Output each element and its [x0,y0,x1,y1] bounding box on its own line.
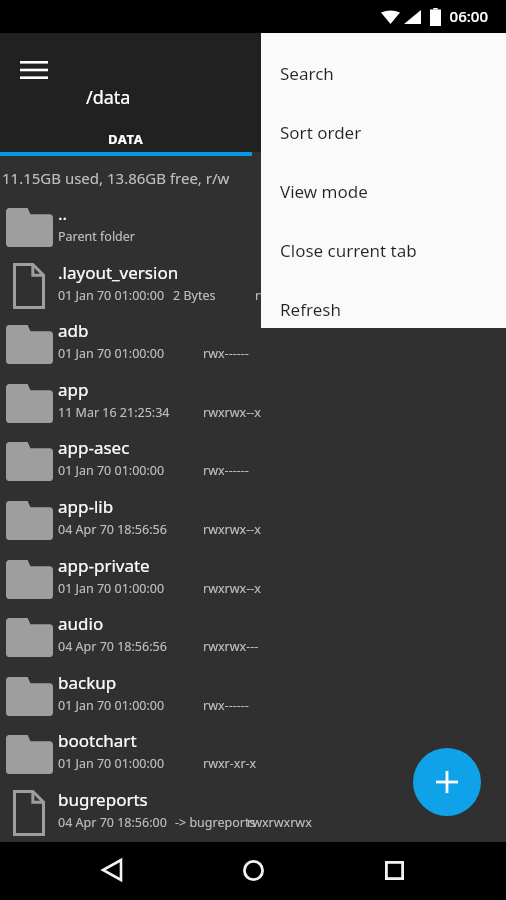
button[interactable]: bootchart [0,725,506,784]
staticText: rw------- [255,287,299,304]
button[interactable]: Sort order [261,108,506,156]
staticText: 01 Jan 70 01:00:00 [58,755,165,772]
staticText: -> bugreports [175,814,256,831]
staticText: rwxrwx--x [203,580,261,597]
staticText: rwxrwx--- [203,638,259,655]
button[interactable]: adb [0,315,506,374]
staticText: rwxrwx--x [203,521,261,538]
staticText: 04 Apr 70 18:56:00 [58,814,167,831]
staticText: rwxrwxrwx [247,814,312,831]
staticText: audio [58,612,104,635]
button[interactable]: .layout_version [0,257,506,316]
button[interactable]: app-private [0,550,506,609]
staticText: 01 Jan 70 01:00:00 [58,287,165,304]
staticText: bugreports [58,788,148,811]
staticText: .. [58,202,68,225]
staticText: rwx------ [203,462,249,479]
staticText: rwx------ [203,697,249,714]
staticText: 04 Apr 70 18:56:56 [58,521,167,538]
staticText: 04 Apr 70 18:56:56 [58,638,167,655]
staticText: Refresh [280,298,341,321]
button[interactable]: bugreports [0,784,506,843]
button[interactable]: Back [84,842,140,898]
staticText: 01 Jan 70 01:00:00 [58,697,165,714]
staticText: 06:00 [449,6,488,26]
staticText: app-lib [58,495,114,518]
staticText: app [58,378,89,401]
staticText: 01 Jan 70 01:00:00 [58,345,165,362]
staticText: /data [86,85,131,110]
button[interactable]: DATA [0,125,252,152]
button[interactable]: Open navigation drawer [8,44,60,96]
staticText: bootchart [58,729,137,752]
button[interactable]: Home [225,842,281,898]
staticText: 01 Jan 70 01:00:00 [58,580,165,597]
button[interactable]: Add [413,748,481,816]
button[interactable]: Search [261,49,506,97]
staticText: adb [58,319,89,342]
staticText: rwx------ [203,345,249,362]
staticText: DATA [108,130,144,148]
staticText: .layout_version [58,261,179,284]
button[interactable]: .. [0,198,506,257]
staticText: Search [280,62,334,85]
button[interactable]: app [0,374,506,433]
staticText: 01 Jan 70 01:00:00 [58,462,165,479]
button[interactable]: View mode [261,167,506,215]
button[interactable]: Refresh [261,285,506,333]
staticText: Close current tab [280,239,417,262]
button[interactable]: app-asec [0,432,506,491]
button[interactable]: app-lib [0,491,506,550]
staticText: rwxr-xr-x [203,755,257,772]
staticText: rwxrwx--x [203,404,261,421]
button[interactable]: Close current tab [261,226,506,274]
button[interactable]: backup [0,667,506,726]
staticText: View mode [280,180,368,203]
staticText: app-asec [58,436,130,459]
staticText: 2 Bytes [173,287,216,304]
staticText: app-private [58,554,150,577]
staticText: 11.15GB used, 13.86GB free, r/w [2,168,230,188]
staticText: 11 Mar 16 21:25:34 [58,404,170,421]
button[interactable]: Recent apps [366,842,422,898]
button[interactable]: audio [0,608,506,667]
staticText: backup [58,671,117,694]
staticText: Sort order [280,121,362,144]
staticText: Parent folder [58,228,136,245]
